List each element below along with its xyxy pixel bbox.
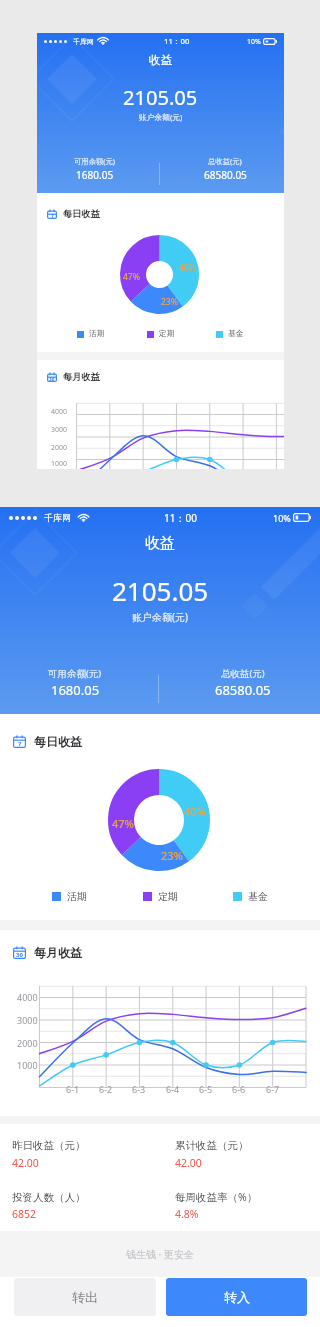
button[interactable]: 定期 [147, 329, 175, 339]
staticText: 6-2 [99, 1083, 113, 1095]
staticText: 1000 [51, 459, 67, 468]
staticText: 3000 [51, 425, 67, 434]
staticText: 68580.05 [215, 681, 271, 699]
staticText: 基金 [248, 890, 268, 903]
staticText: 定期 [158, 890, 178, 903]
button[interactable]: 转入 [166, 1278, 307, 1316]
staticText: 收益 [145, 534, 175, 553]
button[interactable]: 基金 [233, 890, 268, 903]
staticText: 6-5 [199, 1083, 213, 1095]
staticText: 每日收益 [34, 734, 82, 749]
staticText: 2000 [17, 1037, 38, 1049]
button[interactable]: 昨日收益（元） [12, 1136, 152, 1154]
staticText: 可用余额(元) [48, 667, 102, 680]
staticText: 40% [184, 804, 206, 819]
staticText: 千库网 [44, 512, 71, 523]
staticText: 4000 [17, 991, 38, 1003]
staticText: 投资人数（人） [12, 1191, 86, 1204]
button[interactable]: 投资人数（人） [12, 1188, 152, 1206]
staticText: 2105.05 [112, 573, 209, 608]
staticText: 42.00 [12, 1156, 39, 1170]
staticText: 47% [123, 271, 140, 283]
staticText: 6-1 [66, 1083, 80, 1095]
staticText: 2000 [51, 443, 67, 452]
staticText: 6-7 [266, 1083, 280, 1095]
staticText: 6852 [12, 1207, 37, 1221]
staticText: 30 [49, 376, 55, 382]
staticText: 每日收益 [63, 208, 100, 220]
staticText: 6-3 [132, 1083, 146, 1095]
staticText: 转出 [72, 1289, 98, 1305]
staticText: 活期 [89, 329, 105, 339]
staticText: 每月收益 [63, 371, 100, 383]
staticText: 7 [18, 740, 22, 748]
button[interactable]: 转出 [14, 1278, 156, 1316]
staticText: 3000 [17, 1014, 38, 1026]
staticText: 活期 [67, 890, 87, 903]
staticText: 6-6 [232, 1083, 246, 1095]
staticText: 42.00 [175, 1156, 202, 1170]
staticText: 每月收益 [34, 945, 82, 960]
staticText: 68580.05 [204, 168, 247, 182]
staticText: 千库网 [73, 37, 94, 46]
staticText: 11：00 [164, 511, 197, 525]
staticText: 7 [51, 213, 54, 219]
staticText: 40% [179, 262, 196, 274]
staticText: 1000 [17, 1059, 38, 1071]
staticText: 总收益(元) [208, 156, 242, 166]
staticText: 每周收益率（%） [175, 1190, 258, 1204]
staticText: 收益 [149, 53, 173, 68]
staticText: 定期 [159, 329, 175, 339]
staticText: 1680.05 [51, 681, 100, 699]
button[interactable]: 累计收益（元） [175, 1136, 315, 1154]
staticText: 账户余额(元) [132, 610, 188, 624]
staticText: 2105.05 [123, 84, 198, 111]
button[interactable]: 基金 [216, 329, 244, 339]
button[interactable]: 活期 [52, 890, 87, 903]
staticText: 30 [16, 951, 23, 959]
staticText: 23% [161, 848, 183, 863]
staticText: 钱生钱 · 更安全 [126, 1247, 194, 1261]
staticText: 累计收益（元） [175, 1139, 249, 1152]
staticText: 6-4 [166, 1083, 180, 1095]
staticText: 基金 [228, 329, 244, 339]
staticText: 11：00 [164, 36, 190, 47]
staticText: 4.8% [175, 1207, 199, 1221]
staticText: 10% [247, 37, 261, 46]
staticText: 10% [273, 512, 291, 524]
staticText: 47% [112, 816, 134, 831]
staticText: 23% [161, 296, 178, 308]
staticText: 4000 [51, 407, 67, 416]
staticText: 账户余额(元) [139, 112, 183, 123]
staticText: 总收益(元) [221, 667, 265, 680]
button[interactable]: 每周收益率（%） [175, 1188, 315, 1206]
staticText: 昨日收益（元） [12, 1139, 86, 1152]
staticText: 1680.05 [76, 168, 114, 182]
staticText: 转入 [224, 1289, 250, 1305]
button[interactable]: 活期 [77, 329, 105, 339]
button[interactable]: 定期 [143, 890, 178, 903]
staticText: 可用余额(元) [74, 156, 116, 166]
